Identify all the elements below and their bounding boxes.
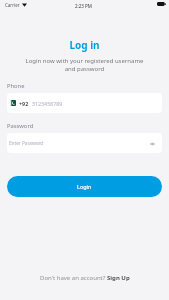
button[interactable]: Show password [148,139,157,148]
staticText: Login [77,183,92,190]
staticText: Login now with your registered username … [0,57,169,73]
staticText: Phone [7,82,25,90]
button[interactable]: +92 [7,93,162,113]
staticText: Password [7,122,34,130]
staticText: +92 [19,100,29,107]
button[interactable]: Sign Up [107,274,130,282]
staticText: Don't have an account? [40,274,107,282]
button[interactable]: Enter Password [7,133,162,153]
staticText: 2:23 PM [75,3,92,9]
staticText: Log in [0,38,169,52]
staticText: 3123456789 [32,100,63,107]
button[interactable]: Login [7,176,162,197]
staticText: Enter Password [9,140,44,146]
staticText: Carrier [5,2,20,8]
